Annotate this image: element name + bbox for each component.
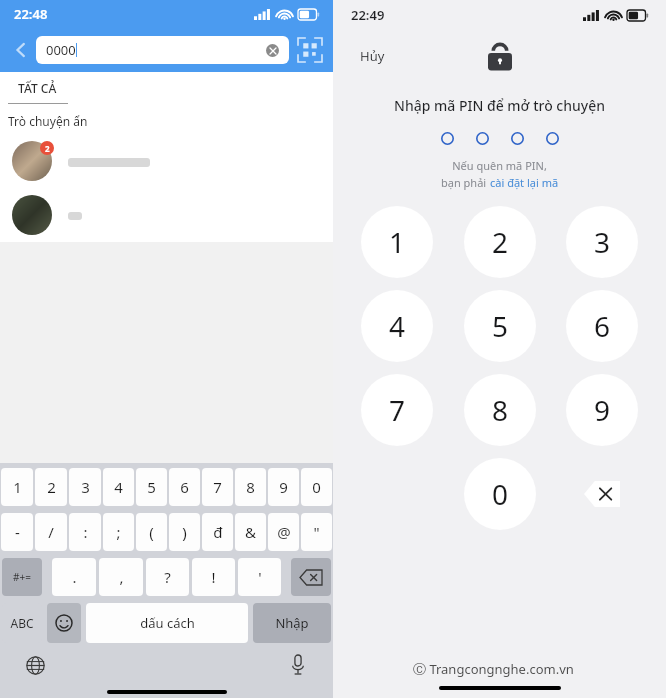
button[interactable]: 7 — [361, 374, 433, 446]
staticText: 1 — [13, 477, 22, 497]
button[interactable]: ; — [103, 513, 134, 551]
button[interactable]: 6 — [566, 290, 638, 362]
staticText: 4 — [114, 477, 123, 497]
staticText: 0 — [312, 477, 321, 497]
button[interactable]: 3 — [69, 468, 101, 506]
button[interactable]: " — [301, 513, 332, 551]
staticText: ; — [116, 522, 121, 542]
staticText: 3 — [594, 223, 611, 261]
button[interactable]: 9 — [268, 468, 299, 506]
button[interactable]: Delete — [566, 458, 638, 530]
button[interactable]: . — [52, 558, 96, 596]
button[interactable]: 8 — [235, 468, 266, 506]
staticText: ' — [258, 567, 262, 587]
button[interactable]: Change keyboard — [20, 650, 50, 680]
button[interactable]: #+= — [2, 558, 42, 596]
button[interactable]: @ — [268, 513, 299, 551]
button[interactable]: 6 — [169, 468, 200, 506]
button[interactable]: , — [99, 558, 143, 596]
button[interactable]: 4 — [103, 468, 134, 506]
staticText: 5 — [492, 307, 509, 345]
staticText: 8 — [246, 477, 255, 497]
staticText: ABC — [10, 615, 34, 631]
staticText: 9 — [279, 477, 288, 497]
button[interactable]: 8 — [464, 374, 536, 446]
staticText: 3 — [81, 477, 90, 497]
button[interactable]: Scan QR code — [297, 37, 323, 63]
button[interactable]: ABC — [2, 603, 42, 643]
button[interactable]: ) — [169, 513, 200, 551]
staticText: " — [313, 522, 320, 542]
staticText: @ — [277, 522, 291, 542]
button[interactable]: Hủy — [360, 47, 385, 65]
button[interactable]: 1 — [361, 206, 433, 278]
staticText: dấu cách — [140, 614, 195, 632]
staticText: . — [72, 567, 77, 587]
staticText: Trò chuyện ẩn — [8, 113, 88, 129]
staticText: 1 — [389, 223, 406, 261]
button[interactable]: cài đặt lại mã — [490, 175, 559, 190]
button[interactable]: 2 — [464, 206, 536, 278]
staticText: 5 — [147, 477, 156, 497]
staticText: #+= — [13, 570, 31, 584]
button[interactable]: 3 — [566, 206, 638, 278]
staticText: 2 — [47, 477, 56, 497]
button[interactable]: / — [35, 513, 67, 551]
staticText: Nhập mã PIN để mở trò chuyện — [333, 96, 666, 115]
button[interactable]: ! — [192, 558, 235, 596]
button[interactable]: Emoji — [47, 603, 81, 643]
staticText: 7 — [389, 391, 406, 429]
button[interactable]: 0000 — [36, 36, 289, 64]
staticText: 6 — [594, 307, 611, 345]
button[interactable]: 7 — [202, 468, 233, 506]
staticText: Nhập — [275, 614, 309, 632]
button[interactable]: 2 — [0, 139, 333, 185]
button[interactable]: 0 — [464, 458, 536, 530]
button[interactable]: 5 — [464, 290, 536, 362]
staticText: 9 — [594, 391, 611, 429]
button[interactable]: 0 — [301, 468, 332, 506]
staticText: & — [245, 522, 256, 542]
button[interactable]: 9 — [566, 374, 638, 446]
button[interactable]: - — [1, 513, 33, 551]
staticText: 2 — [45, 143, 50, 154]
staticText: 0000 — [46, 41, 76, 59]
staticText: Nếu quên mã PIN, — [333, 158, 666, 173]
staticText: 22:49 — [351, 6, 385, 24]
staticText: 22:48 — [14, 5, 48, 23]
staticText: ( — [149, 522, 154, 542]
button[interactable]: Clear — [266, 44, 279, 57]
staticText: 7 — [213, 477, 222, 497]
button[interactable]: ? — [146, 558, 189, 596]
staticText: ? — [164, 567, 171, 587]
button[interactable]: 1 — [1, 468, 33, 506]
staticText: / — [48, 522, 54, 542]
staticText: - — [15, 522, 20, 542]
button[interactable]: 2 — [35, 468, 67, 506]
button[interactable]: Voice input — [283, 650, 313, 680]
button[interactable]: 4 — [361, 290, 433, 362]
staticText: 4 — [389, 307, 406, 345]
button[interactable]: Back — [6, 35, 36, 65]
staticText: 8 — [492, 391, 509, 429]
staticText: bạn phải — [441, 175, 490, 190]
staticText: đ — [213, 522, 223, 542]
button[interactable]: 5 — [136, 468, 167, 506]
button[interactable]: dấu cách — [86, 603, 248, 643]
button[interactable]: Backspace — [291, 558, 331, 596]
button[interactable] — [0, 193, 333, 239]
button[interactable]: & — [235, 513, 266, 551]
button[interactable]: Nhập — [253, 603, 331, 643]
staticText: 2 — [492, 223, 509, 261]
staticText: 0 — [492, 475, 509, 513]
staticText: ) — [182, 522, 187, 542]
staticText: Ⓒ Trangcongnghe.com.vn — [413, 660, 666, 678]
staticText: ! — [211, 567, 216, 587]
button[interactable]: đ — [202, 513, 233, 551]
button[interactable]: ' — [238, 558, 281, 596]
button[interactable]: : — [69, 513, 101, 551]
staticText: , — [119, 567, 124, 587]
button[interactable]: ( — [136, 513, 167, 551]
staticText: 6 — [180, 477, 189, 497]
button[interactable]: TẤT CẢ — [18, 80, 57, 96]
